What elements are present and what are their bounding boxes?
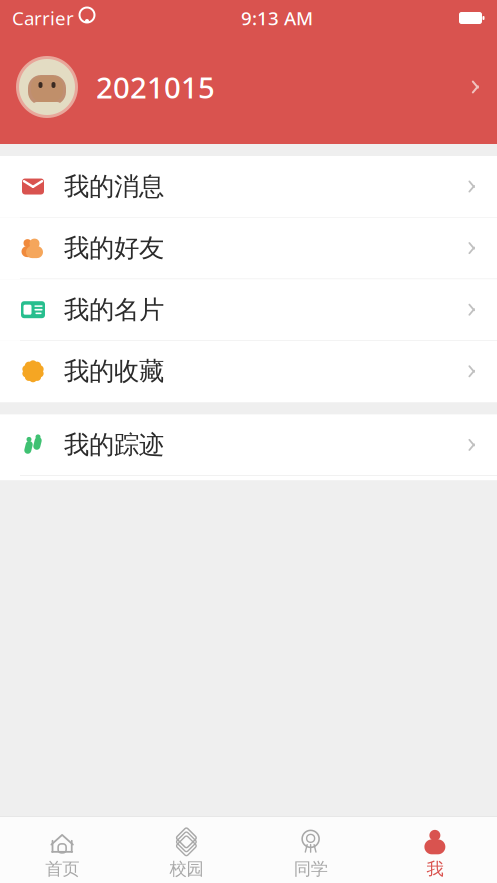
staticText: 首页 <box>45 858 79 880</box>
button[interactable]: 我的名片 <box>0 279 497 341</box>
staticText: Carrier <box>12 6 74 30</box>
staticText: 校园 <box>169 858 203 880</box>
staticText: 我的踪迹 <box>64 429 164 460</box>
button[interactable]: 同学 <box>248 817 373 883</box>
button[interactable]: 首页 <box>0 817 124 883</box>
button[interactable]: 我的收藏 <box>0 341 497 402</box>
button[interactable]: 校园 <box>124 817 248 883</box>
staticText: 我的收藏 <box>64 356 164 387</box>
button[interactable]: 我的消息 <box>0 156 497 218</box>
button[interactable]: 2021015 <box>0 31 497 143</box>
button[interactable]: 我的办理 <box>0 476 497 538</box>
button[interactable]: 我的好友 <box>0 218 497 279</box>
staticText: 同学 <box>294 858 328 880</box>
button[interactable]: 我的踪迹 <box>0 414 497 476</box>
button[interactable]: 我 <box>373 817 497 883</box>
staticText: 我的名片 <box>64 294 164 325</box>
staticText: 我 <box>426 858 443 880</box>
staticText: 2021015 <box>96 67 215 106</box>
staticText: 9:13 AM <box>241 6 313 30</box>
staticText: 我的消息 <box>64 171 164 202</box>
staticText: 我的好友 <box>64 232 164 264</box>
